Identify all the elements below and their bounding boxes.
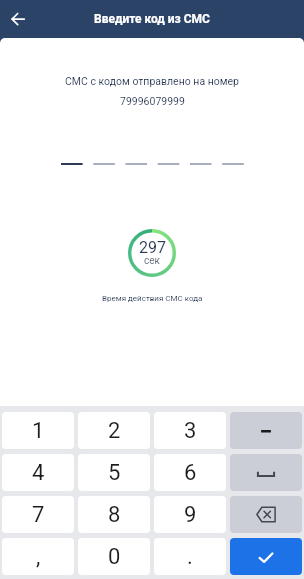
staticText: 6 bbox=[184, 460, 197, 486]
staticText: 9 bbox=[184, 502, 197, 528]
button[interactable]: 9 bbox=[154, 496, 226, 533]
button[interactable]: 1 bbox=[2, 412, 74, 449]
staticText: 8 bbox=[108, 502, 121, 528]
staticText: 297 bbox=[139, 238, 166, 257]
button[interactable]: Space bbox=[230, 454, 302, 491]
button[interactable]: 3 bbox=[154, 412, 226, 449]
staticText: 3 bbox=[184, 418, 197, 444]
button[interactable]: 6 bbox=[154, 454, 226, 491]
staticText: 4 bbox=[32, 460, 45, 486]
staticText: 5 bbox=[108, 460, 121, 486]
button[interactable]: 2 bbox=[78, 412, 150, 449]
staticText: Время действия СМС кода bbox=[102, 294, 203, 303]
staticText: 1 bbox=[32, 418, 45, 444]
staticText: сек bbox=[144, 255, 160, 267]
button[interactable]: . bbox=[154, 538, 226, 575]
staticText: 7 bbox=[32, 502, 45, 528]
button[interactable]: 4 bbox=[2, 454, 74, 491]
button[interactable]: 8 bbox=[78, 496, 150, 533]
button[interactable]: Confirm bbox=[230, 538, 302, 575]
button[interactable]: Backspace bbox=[230, 496, 302, 533]
staticText: 2 bbox=[108, 418, 121, 444]
staticText: Введите код из СМС bbox=[94, 12, 210, 26]
button[interactable]: Back bbox=[6, 7, 30, 31]
button[interactable]: , bbox=[2, 538, 74, 575]
staticText: . bbox=[187, 544, 193, 570]
button[interactable]: Dash bbox=[230, 412, 302, 449]
button[interactable]: 7 bbox=[2, 496, 74, 533]
button[interactable]: 5 bbox=[78, 454, 150, 491]
button[interactable]: 0 bbox=[78, 538, 150, 575]
staticText: 0 bbox=[108, 544, 121, 570]
staticText: 79996079999 bbox=[120, 95, 185, 107]
staticText: , bbox=[36, 544, 41, 570]
staticText: СМС с кодом отправлено на номер bbox=[65, 75, 239, 87]
